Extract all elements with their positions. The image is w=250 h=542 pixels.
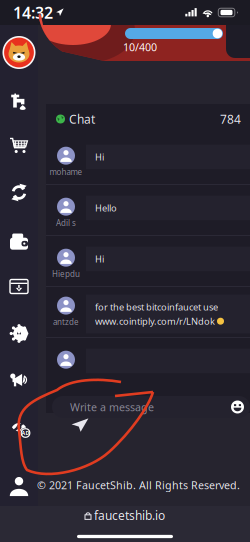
button[interactable]: Network bbox=[0, 310, 38, 357]
staticText: for the best bitcoinfaucet use bbox=[95, 301, 218, 313]
button[interactable]: Promote bbox=[0, 357, 38, 404]
staticText: Adil s bbox=[56, 218, 76, 228]
staticText: faucetshib.io bbox=[94, 507, 165, 523]
button[interactable]: Hiepdu bbox=[46, 236, 250, 286]
staticText: AD bbox=[21, 429, 29, 437]
button[interactable]: Withdraw bbox=[0, 263, 38, 310]
staticText: © 2021 FaucetShib. All Rights Reserved. bbox=[37, 478, 240, 492]
button[interactable]: antzde bbox=[46, 287, 250, 337]
button[interactable]: Shop bbox=[0, 123, 38, 169]
button[interactable] bbox=[46, 338, 250, 388]
staticText: Hi bbox=[95, 151, 104, 163]
staticText: antzde bbox=[53, 317, 79, 327]
staticText: 784 bbox=[220, 111, 241, 127]
button[interactable]: Write a message bbox=[46, 396, 250, 418]
staticText: 14:32 bbox=[13, 2, 53, 23]
button[interactable]: Adil s bbox=[46, 185, 250, 235]
button[interactable]: Faucet bbox=[0, 81, 38, 123]
staticText: www.cointiply.com/r/LNdok bbox=[95, 315, 215, 327]
button[interactable]: Wallet bbox=[0, 216, 38, 263]
button[interactable]: Account bbox=[0, 466, 38, 506]
staticText: Write a message bbox=[70, 400, 154, 414]
button[interactable]: mohame bbox=[46, 134, 250, 184]
staticText: Chat bbox=[69, 111, 95, 127]
staticText: Hello bbox=[95, 202, 117, 214]
staticText: mohame bbox=[49, 167, 82, 177]
button[interactable]: Swap bbox=[0, 169, 38, 216]
staticText: Hi bbox=[95, 253, 104, 265]
staticText: 10/400 bbox=[123, 40, 157, 54]
button[interactable]: Remove ads bbox=[0, 404, 38, 451]
staticText: Hiepdu bbox=[52, 269, 80, 279]
button[interactable]: Send bbox=[66, 413, 94, 437]
